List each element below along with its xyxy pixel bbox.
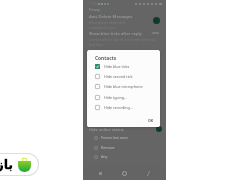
button[interactable]: Remove bbox=[94, 143, 166, 152]
staticText: Hide typing... bbox=[104, 95, 127, 100]
button[interactable]: Hide blue ticks bbox=[95, 61, 160, 71]
button[interactable]: Anti-Delete Messages bbox=[89, 14, 147, 30]
staticText: Freeze last seen bbox=[101, 135, 128, 140]
staticText: When people delete their messages for yo… bbox=[89, 21, 126, 30]
staticText: Remove bbox=[101, 145, 115, 150]
staticText: Hide blue microphone bbox=[104, 84, 143, 89]
staticText: Show blue ticks after reply bbox=[89, 31, 142, 37]
staticText: Privacy bbox=[89, 8, 100, 12]
staticText: Contacts will see your blue ticks even w… bbox=[89, 38, 156, 46]
staticText: Hide online status bbox=[89, 127, 156, 132]
button[interactable]: Any bbox=[94, 152, 166, 161]
button[interactable]: OK bbox=[146, 117, 156, 124]
staticText: Hide recording... bbox=[104, 105, 133, 110]
button[interactable]: Back bbox=[94, 167, 107, 180]
staticText: Any bbox=[101, 154, 108, 159]
button[interactable]: Anti-Delete toggle bbox=[153, 17, 160, 24]
button[interactable]: بازار bbox=[0, 154, 38, 175]
button[interactable]: Home bbox=[118, 167, 131, 180]
button[interactable]: Show blue ticks after reply bbox=[89, 31, 164, 46]
button[interactable]: Hide second tick bbox=[95, 71, 160, 81]
button[interactable]: Recents bbox=[142, 167, 155, 180]
staticText: Hide second tick bbox=[104, 74, 133, 79]
staticText: OK bbox=[148, 118, 154, 123]
button[interactable]: Freeze last seen bbox=[94, 133, 166, 142]
staticText: Contacts bbox=[95, 55, 117, 62]
staticText: Hide blue ticks bbox=[104, 64, 130, 69]
button[interactable]: Hide online status bbox=[89, 126, 162, 132]
staticText: Anti-Delete Messages bbox=[89, 14, 133, 20]
button[interactable]: Hide typing... bbox=[95, 92, 160, 102]
staticText: بازار bbox=[0, 157, 14, 172]
button[interactable]: Hide recording... bbox=[95, 102, 160, 112]
button[interactable]: Hide blue microphone bbox=[95, 81, 160, 91]
